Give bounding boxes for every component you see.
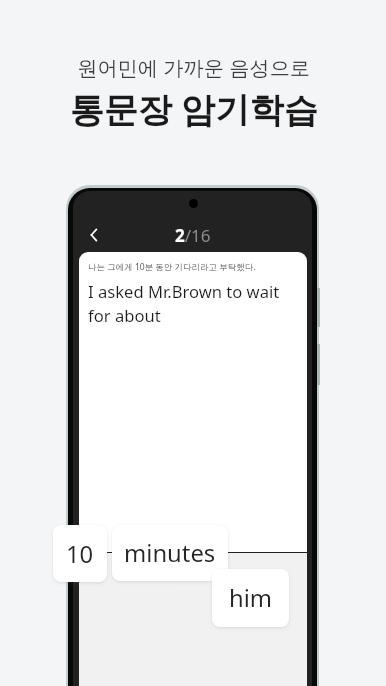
staticText: I asked Mr.Brown to wait for about: [88, 280, 285, 327]
button[interactable]: minutes: [112, 525, 228, 581]
button[interactable]: him: [212, 569, 289, 627]
staticText: 10: [66, 538, 94, 570]
button[interactable]: Back: [73, 220, 112, 250]
staticText: 2/16: [175, 224, 211, 247]
staticText: minutes: [124, 537, 216, 569]
button[interactable]: 10: [53, 525, 107, 582]
staticText: 통문장 암기학습: [69, 85, 318, 132]
staticText: 나는 그에게 10분 동안 기다리라고 부탁했다.: [88, 261, 256, 273]
staticText: 원어민에 가까운 음성으로: [77, 53, 310, 81]
staticText: him: [229, 582, 273, 614]
